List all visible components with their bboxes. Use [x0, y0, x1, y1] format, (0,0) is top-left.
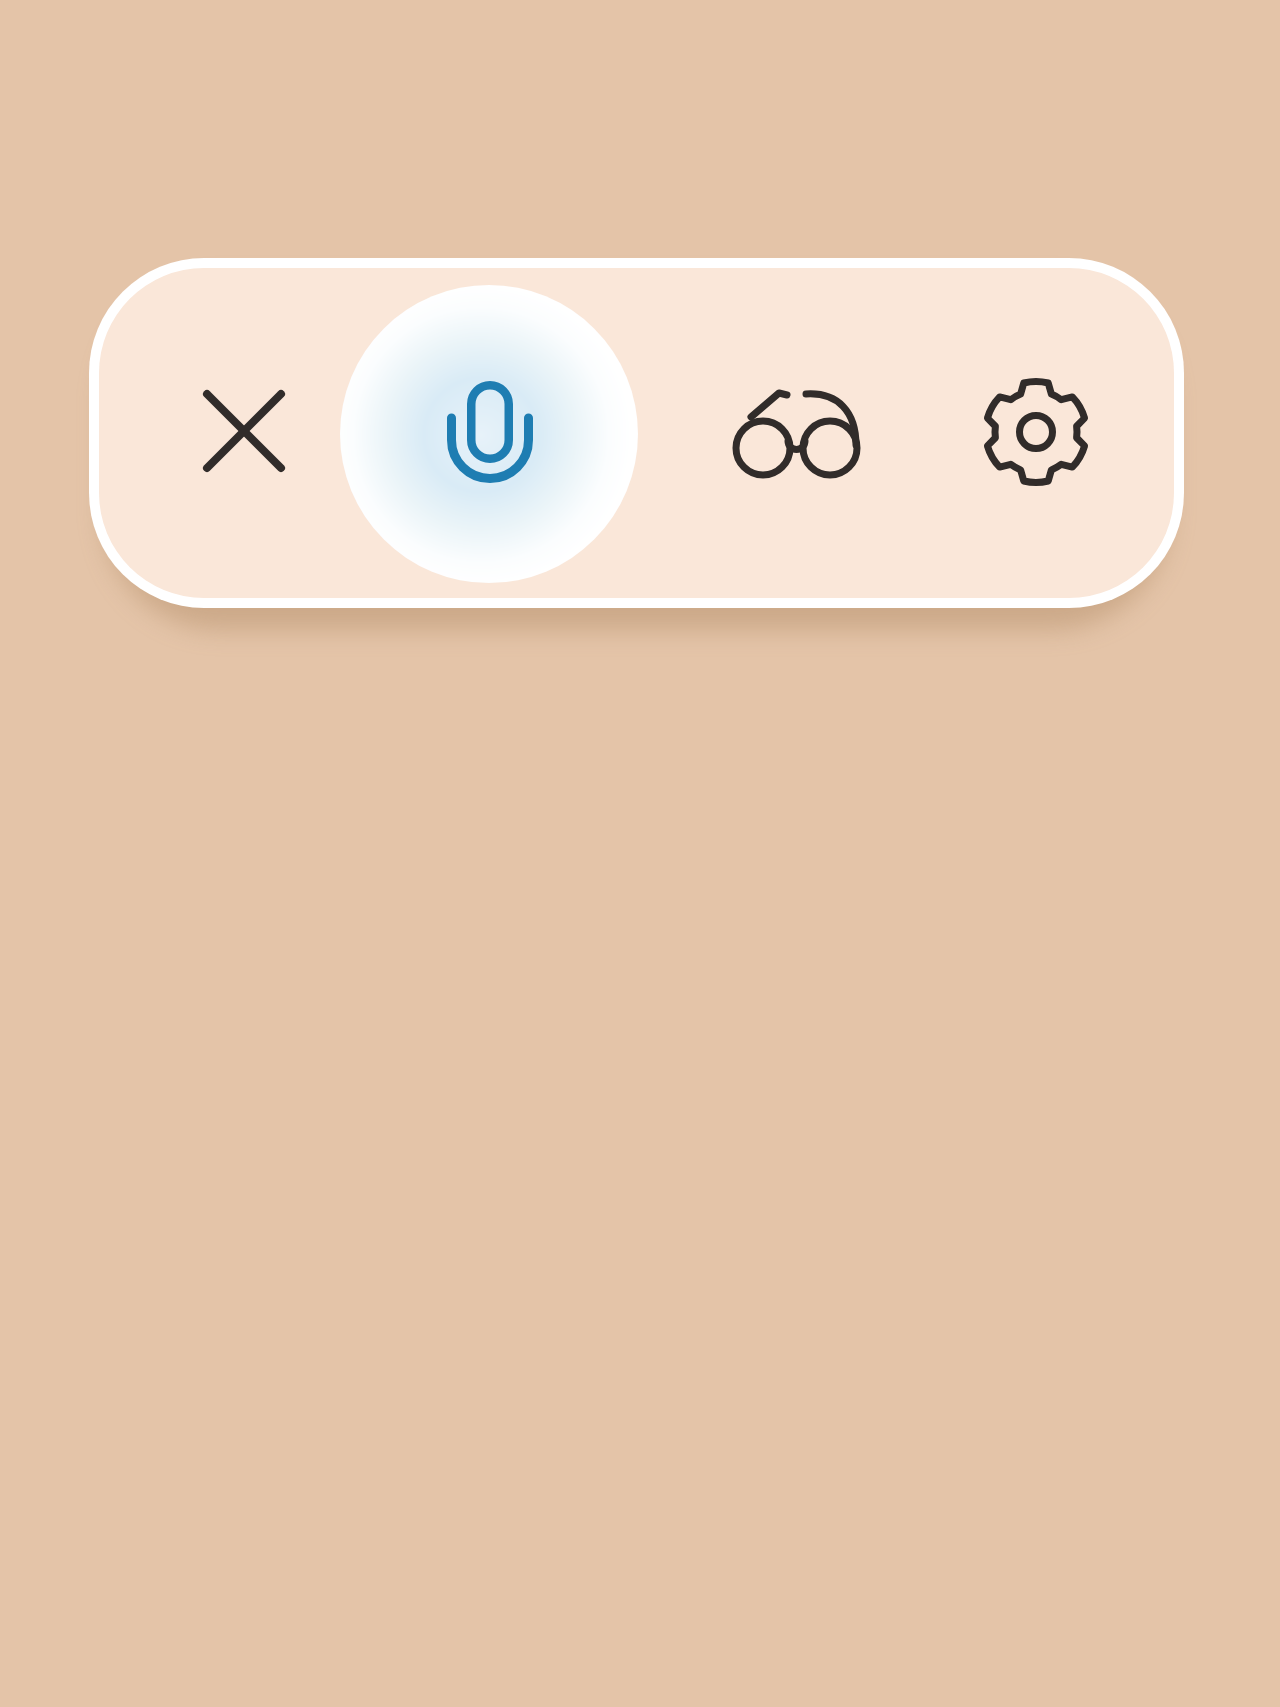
button[interactable] — [712, 370, 882, 510]
button[interactable] — [415, 357, 565, 507]
button[interactable] — [189, 376, 299, 486]
button[interactable] — [966, 362, 1106, 502]
